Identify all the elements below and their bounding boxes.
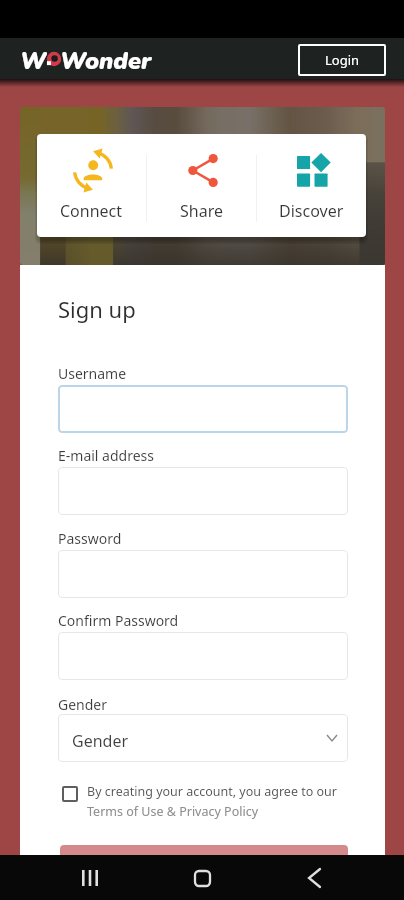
button[interactable]: Connect bbox=[37, 134, 146, 237]
staticText: Username bbox=[58, 364, 127, 383]
staticText: By creating your account, you agree to o… bbox=[87, 783, 337, 800]
staticText: Discover bbox=[279, 200, 344, 222]
staticText: Gender bbox=[72, 730, 129, 752]
staticText: E-mail address bbox=[58, 446, 154, 465]
button[interactable] bbox=[58, 467, 348, 515]
staticText: Share bbox=[180, 200, 223, 222]
button[interactable] bbox=[58, 550, 348, 598]
staticText: Sign up bbox=[178, 857, 231, 877]
button[interactable]: Login bbox=[298, 44, 386, 76]
staticText: Password bbox=[58, 529, 122, 548]
staticText: Gender bbox=[58, 695, 108, 714]
button[interactable]: Home bbox=[180, 856, 224, 900]
staticText: Confirm Password bbox=[58, 611, 179, 630]
button[interactable]: Discover bbox=[257, 134, 366, 237]
staticText: Login bbox=[325, 51, 360, 69]
staticText: Connect bbox=[60, 200, 123, 222]
button[interactable]: By creating your account, you agree to o… bbox=[62, 783, 362, 820]
staticText: Sign up bbox=[58, 294, 136, 324]
button[interactable] bbox=[58, 385, 348, 433]
button[interactable] bbox=[58, 632, 348, 680]
staticText: Terms of Use & Privacy Policy bbox=[87, 803, 259, 820]
staticText: W bbox=[20, 45, 47, 73]
button[interactable]: Back bbox=[292, 856, 336, 900]
button[interactable]: Share bbox=[147, 134, 256, 237]
staticText: Wonder bbox=[60, 45, 152, 73]
button[interactable]: Gender bbox=[58, 714, 348, 762]
button[interactable]: Sign up bbox=[60, 845, 348, 889]
button[interactable]: Recents bbox=[68, 856, 112, 900]
